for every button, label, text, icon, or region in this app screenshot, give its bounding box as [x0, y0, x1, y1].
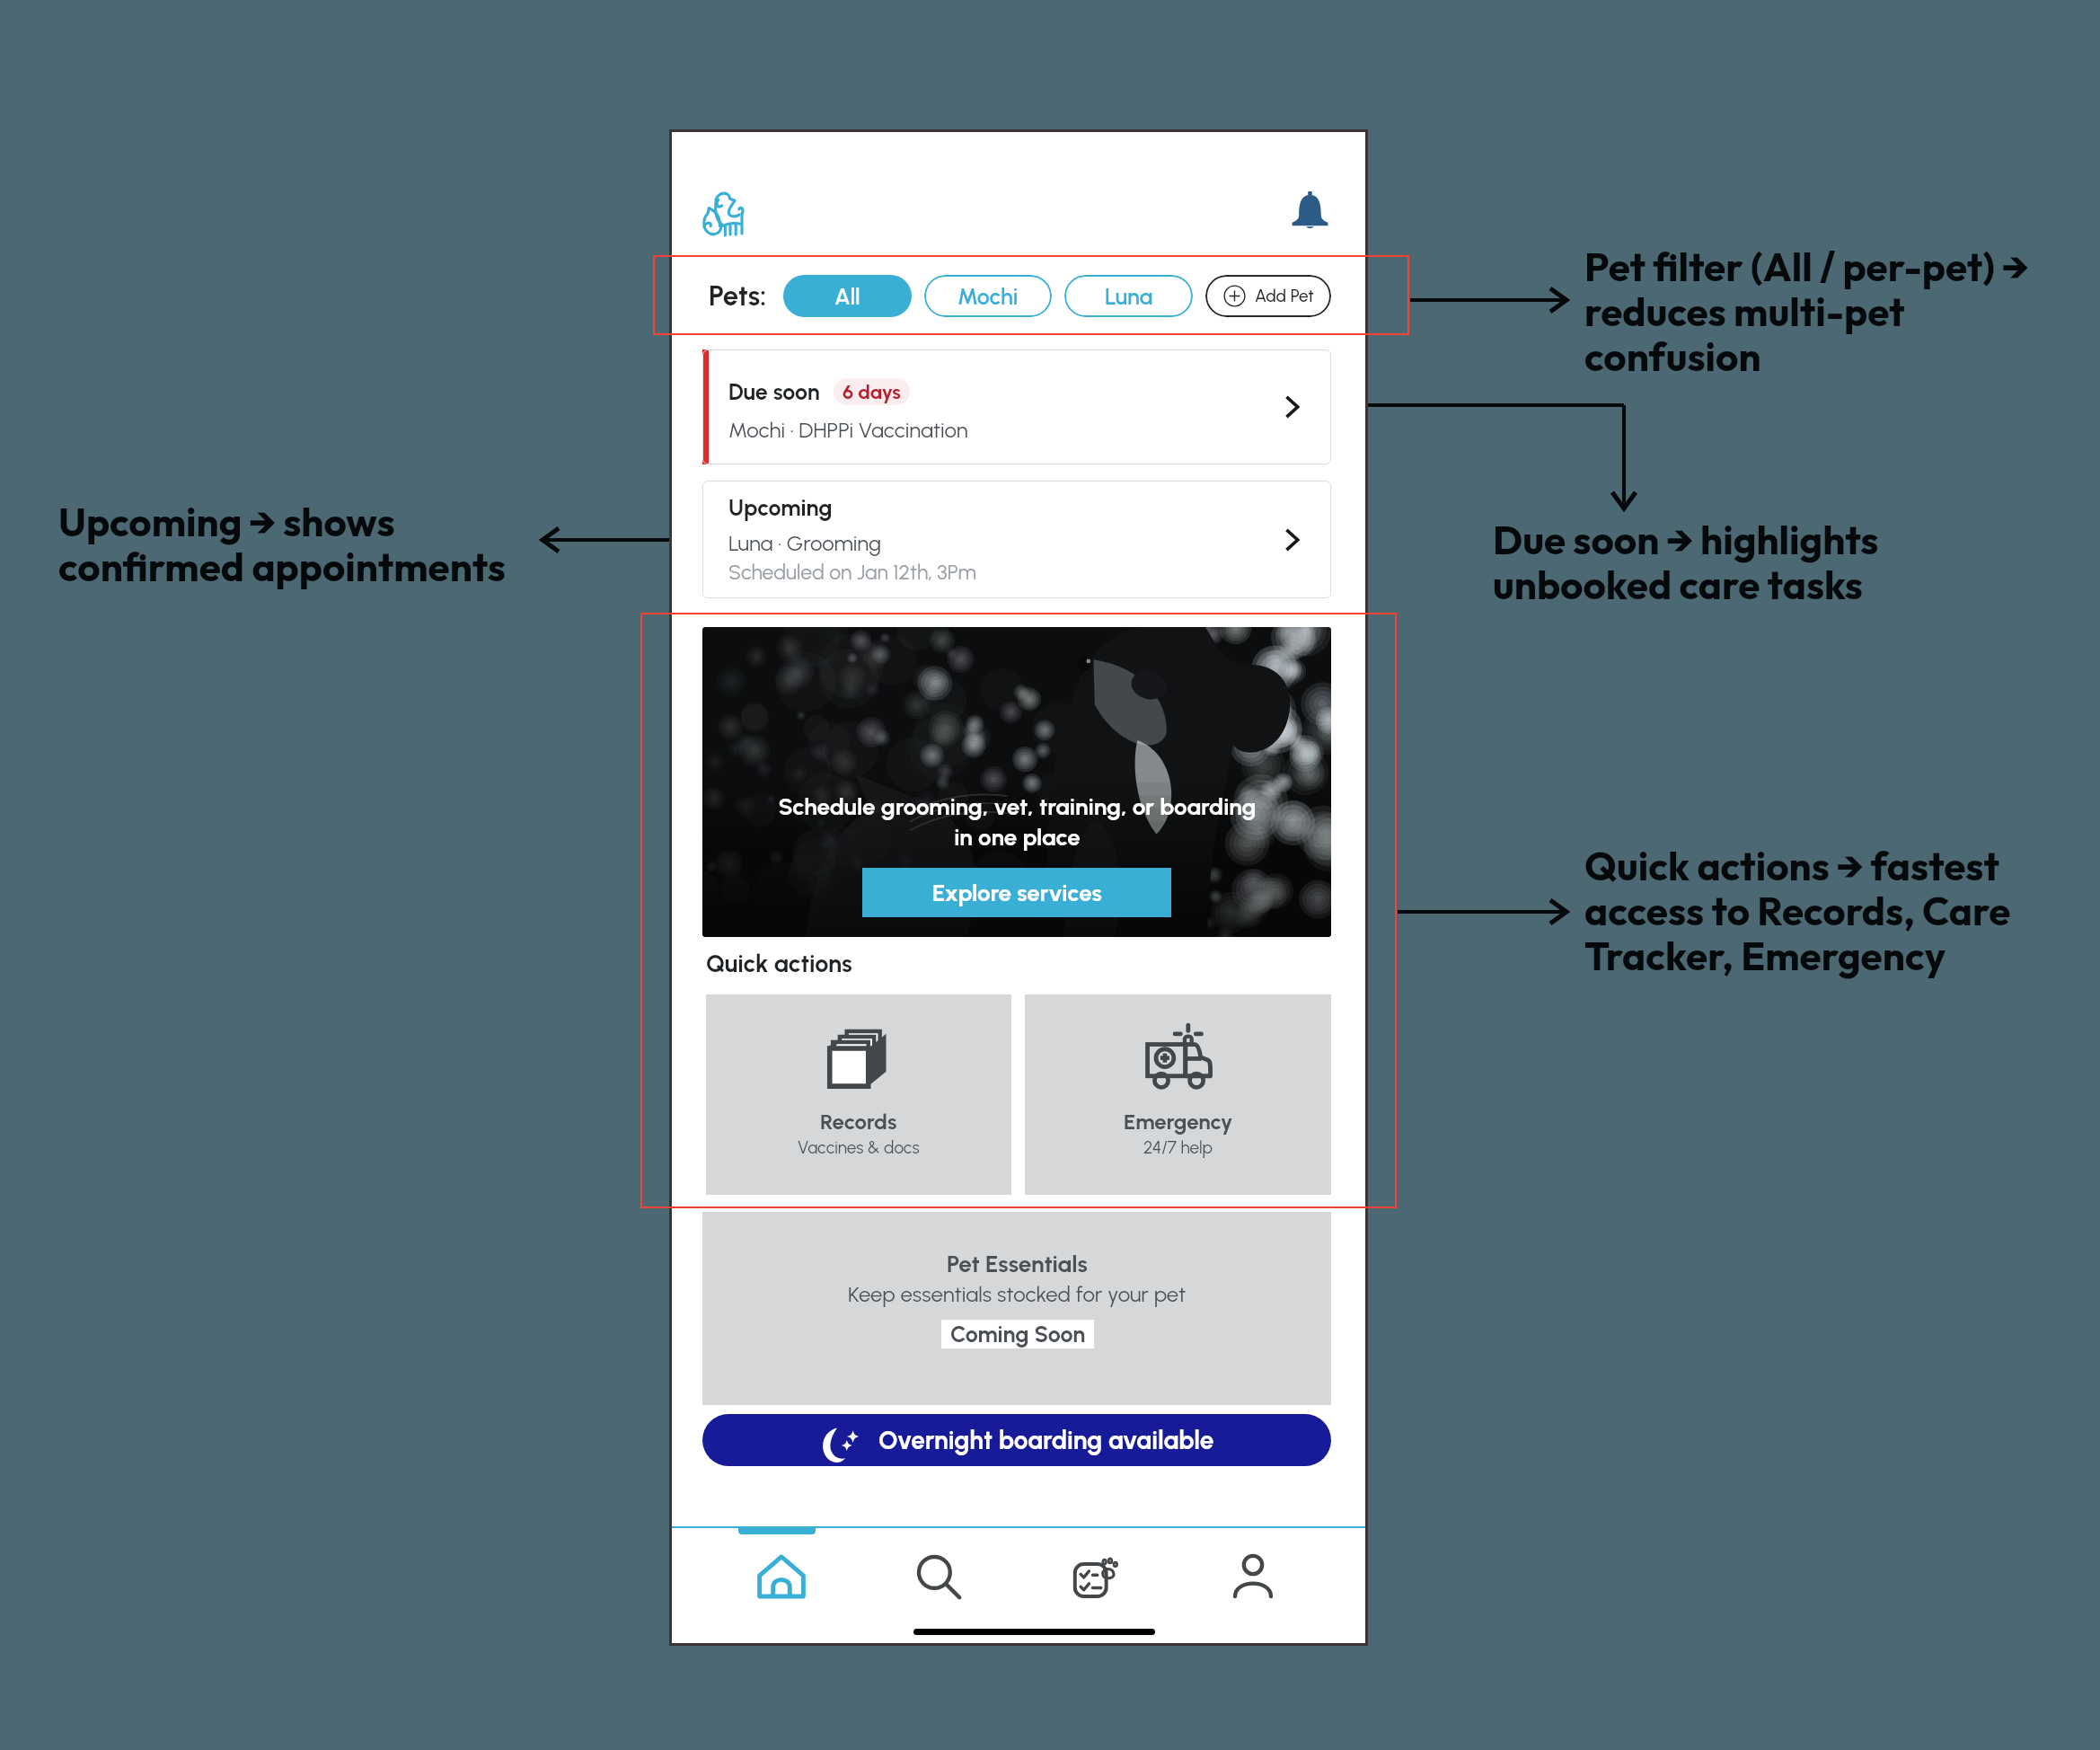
- staticText: Due soon → highlights unbooked care task…: [1493, 515, 1879, 609]
- staticText: Schedule grooming, vet, training, or boa…: [778, 792, 1257, 851]
- staticText: Quick actions → fastest access to Record…: [1584, 841, 2011, 980]
- button[interactable]: Open upcoming appointment: [1281, 528, 1304, 552]
- staticText: Coming Soon: [950, 1321, 1086, 1348]
- staticText: Quick actions: [706, 949, 852, 977]
- button[interactable]: Mochi: [924, 275, 1052, 317]
- button[interactable]: Schedule grooming, vet, training, or boa…: [702, 627, 1331, 937]
- button[interactable]: Emergency: [1025, 994, 1331, 1195]
- staticText: Pet Essentials: [947, 1250, 1088, 1277]
- staticText: Emergency: [1124, 1109, 1233, 1135]
- staticText: Records: [820, 1109, 897, 1135]
- staticText: All: [834, 283, 860, 310]
- button[interactable]: Explore services: [862, 868, 1171, 917]
- staticText: Add Pet: [1255, 286, 1314, 306]
- button[interactable]: Pet app logo: [701, 185, 746, 236]
- button[interactable]: Upcoming: [702, 481, 1331, 598]
- button[interactable]: Care tracker: [1017, 1528, 1174, 1646]
- staticText: Upcoming → shows confirmed appointments: [58, 497, 506, 591]
- staticText: Overnight boarding available: [878, 1425, 1214, 1455]
- button[interactable]: Home: [702, 1528, 860, 1646]
- staticText: 24/7 help: [1143, 1137, 1213, 1158]
- button[interactable]: Profile: [1174, 1528, 1331, 1646]
- staticText: Mochi: [957, 283, 1019, 310]
- staticText: Mochi · DHPPi Vaccination: [728, 417, 968, 443]
- staticText: Pets:: [709, 279, 767, 313]
- staticText: Explore services: [932, 879, 1102, 906]
- button[interactable]: Open due soon task: [1281, 395, 1304, 419]
- button[interactable]: Luna: [1064, 275, 1193, 317]
- button[interactable]: Notifications: [1292, 191, 1328, 228]
- button[interactable]: Pet Essentials: [702, 1212, 1331, 1405]
- button[interactable]: Search: [860, 1528, 1017, 1646]
- button[interactable]: All: [783, 275, 912, 317]
- staticText: Luna · Grooming: [728, 530, 882, 556]
- staticText: Luna: [1105, 283, 1153, 310]
- button[interactable]: Due soon: [702, 349, 1331, 464]
- staticText: Due soon: [728, 378, 820, 405]
- staticText: Keep essentials stocked for your pet: [848, 1281, 1187, 1307]
- button[interactable]: Records: [706, 994, 1011, 1195]
- staticText: Pet filter (All / per-pet) → reduces mul…: [1584, 242, 2029, 381]
- button[interactable]: Overnight boarding available: [702, 1414, 1331, 1466]
- staticText: Upcoming: [728, 494, 833, 521]
- staticText: Scheduled on Jan 12th, 3Pm: [728, 560, 976, 585]
- staticText: Vaccines & docs: [798, 1137, 920, 1158]
- staticText: 6 days: [843, 380, 901, 403]
- button[interactable]: Add Pet: [1205, 275, 1331, 317]
